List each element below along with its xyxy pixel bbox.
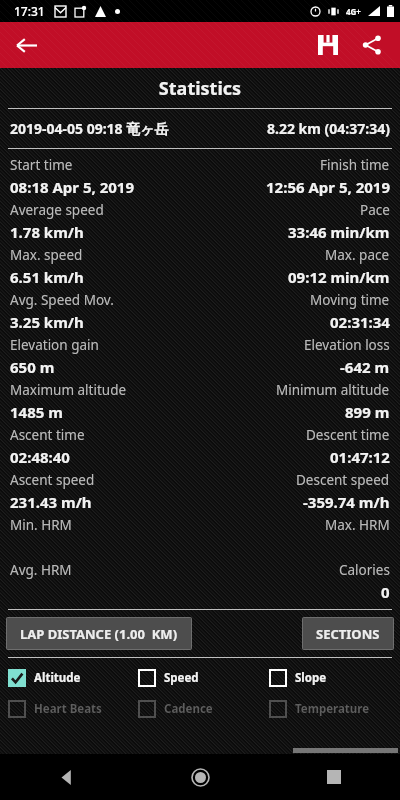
button[interactable]: SECTIONS xyxy=(303,618,393,649)
button[interactable]: Share xyxy=(350,23,394,67)
button[interactable]: Heart Beats xyxy=(8,698,138,720)
staticText: Heart Beats xyxy=(34,701,102,717)
staticText: Maximum altitude xyxy=(10,381,127,399)
staticText: Max. HRM xyxy=(325,516,390,534)
staticText: SECTIONS xyxy=(316,625,380,643)
button[interactable]: Home xyxy=(134,754,267,800)
staticText: 0 xyxy=(381,582,390,602)
staticText: 2019-04-05 09:18 竜ヶ岳 xyxy=(10,119,169,138)
button[interactable]: Save xyxy=(306,23,350,67)
staticText: Temperature xyxy=(295,701,370,717)
staticText: 12:56 Apr 5, 2019 xyxy=(266,177,390,197)
staticText: Min. HRM xyxy=(10,516,72,534)
staticText: Calories xyxy=(339,561,390,579)
staticText: Minimum altitude xyxy=(276,381,390,399)
button[interactable]: Temperature xyxy=(269,698,400,720)
staticText: 899 m xyxy=(345,402,390,422)
staticText: Slope xyxy=(295,670,327,686)
button[interactable]: LAP DISTANCE (1.00 KM) xyxy=(7,618,191,649)
staticText: Elevation loss xyxy=(304,336,390,354)
staticText: Avg. HRM xyxy=(10,561,72,579)
staticText: Descent speed xyxy=(296,471,390,489)
staticText: 33:46 min/km xyxy=(288,222,390,242)
staticText: Statistics xyxy=(0,76,400,101)
staticText: Max. speed xyxy=(10,246,83,264)
staticText: 231.43 m/h xyxy=(10,492,92,512)
staticText: 02:48:40 xyxy=(10,447,70,467)
staticText: Ascent speed xyxy=(10,471,95,489)
button[interactable]: Recent apps xyxy=(267,754,400,800)
staticText: Speed xyxy=(164,670,199,686)
staticText: 02:31:34 xyxy=(330,312,390,332)
button[interactable]: Slope xyxy=(269,667,400,689)
staticText: -359.74 m/h xyxy=(303,492,390,512)
staticText: 3.25 km/h xyxy=(10,312,84,332)
staticText: 01:47:12 xyxy=(330,447,390,467)
button[interactable]: Speed xyxy=(138,667,269,689)
button[interactable]: Altitude xyxy=(8,667,138,689)
staticText: Finish time xyxy=(320,156,390,174)
staticText: 650 m xyxy=(10,357,55,377)
staticText: 4G+ xyxy=(346,6,361,17)
staticText: Max. pace xyxy=(325,246,390,264)
button[interactable]: Back xyxy=(0,754,134,800)
staticText: Avg. Speed Mov. xyxy=(10,291,114,309)
staticText: 08:18 Apr 5, 2019 xyxy=(10,177,134,197)
staticText: 8.22 km (04:37:34) xyxy=(267,119,390,138)
staticText: Descent time xyxy=(306,426,390,444)
staticText: Moving time xyxy=(310,291,390,309)
button[interactable]: Back xyxy=(4,23,48,67)
staticText: 09:12 min/km xyxy=(288,267,390,287)
button[interactable]: Cadence xyxy=(138,698,269,720)
staticText: 6.51 km/h xyxy=(10,267,84,287)
staticText: Ascent time xyxy=(10,426,85,444)
staticText: Altitude xyxy=(34,670,81,686)
staticText: Cadence xyxy=(164,701,213,717)
staticText: 1485 m xyxy=(10,402,63,422)
staticText: -642 m xyxy=(340,357,390,377)
staticText: Average speed xyxy=(10,201,104,219)
staticText: Start time xyxy=(10,156,73,174)
staticText: Pace xyxy=(360,201,390,219)
staticText: LAP DISTANCE (1.00 KM) xyxy=(20,625,178,643)
staticText: Elevation gain xyxy=(10,336,99,354)
staticText: 1.78 km/h xyxy=(10,222,84,242)
staticText: 17:31 xyxy=(14,3,45,19)
